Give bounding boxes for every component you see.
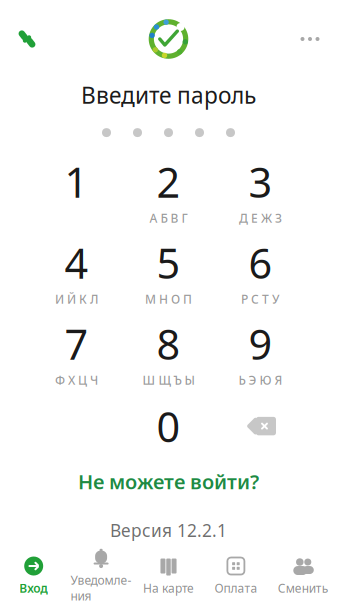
staticText: 1 bbox=[64, 154, 88, 209]
button[interactable]: 6 bbox=[214, 240, 306, 302]
staticText: А Б В Г bbox=[149, 210, 187, 226]
staticText: Ф Х Ц Ч bbox=[55, 372, 98, 388]
button[interactable]: Вход bbox=[0, 554, 67, 598]
staticText: Р С Т У bbox=[241, 291, 280, 307]
staticText: Версия 12.2.1 bbox=[110, 519, 227, 542]
staticText: Ь Э Ю Я bbox=[238, 372, 282, 388]
button[interactable]: Delete bbox=[214, 402, 306, 450]
staticText: Сменить bbox=[278, 580, 329, 596]
button[interactable]: 9 bbox=[214, 321, 306, 383]
button[interactable]: Не можете войти? bbox=[62, 462, 275, 501]
button[interactable]: 2 bbox=[122, 159, 214, 221]
button[interactable]: 5 bbox=[122, 240, 214, 302]
button[interactable]: 1 bbox=[30, 159, 122, 221]
button[interactable]: Сменить bbox=[270, 554, 337, 598]
staticText: 9 bbox=[248, 316, 272, 371]
button[interactable]: More options bbox=[293, 22, 327, 56]
staticText: 8 bbox=[156, 316, 180, 371]
button[interactable]: 4 bbox=[30, 240, 122, 302]
staticText: 2 bbox=[156, 154, 180, 209]
staticText: И Й К Л bbox=[55, 291, 98, 307]
button[interactable]: Call support bbox=[10, 22, 44, 56]
staticText: М Н О П bbox=[145, 291, 192, 307]
staticText: Ш Щ Ъ Ы bbox=[142, 372, 194, 388]
staticText: 4 bbox=[64, 235, 88, 290]
button[interactable]: 3 bbox=[214, 159, 306, 221]
staticText: На карте bbox=[143, 580, 194, 596]
button[interactable]: 8 bbox=[122, 321, 214, 383]
staticText: Не можете войти? bbox=[78, 468, 259, 495]
staticText: 0 bbox=[156, 399, 180, 454]
staticText: Вход bbox=[19, 580, 48, 596]
staticText: Д Е Ж З bbox=[239, 210, 282, 226]
staticText: Введите пароль bbox=[81, 80, 256, 110]
staticText: 5 bbox=[156, 235, 180, 290]
staticText: Уведомления bbox=[71, 572, 132, 602]
button[interactable]: Оплата bbox=[202, 554, 270, 598]
button[interactable]: 7 bbox=[30, 321, 122, 383]
staticText: 6 bbox=[248, 235, 272, 290]
button[interactable]: Уведомления bbox=[67, 554, 135, 598]
button[interactable]: 0 bbox=[122, 402, 214, 450]
staticText: 3 bbox=[248, 154, 272, 209]
staticText: 7 bbox=[64, 316, 88, 371]
staticText: Оплата bbox=[214, 580, 257, 596]
button[interactable]: На карте bbox=[135, 554, 202, 598]
